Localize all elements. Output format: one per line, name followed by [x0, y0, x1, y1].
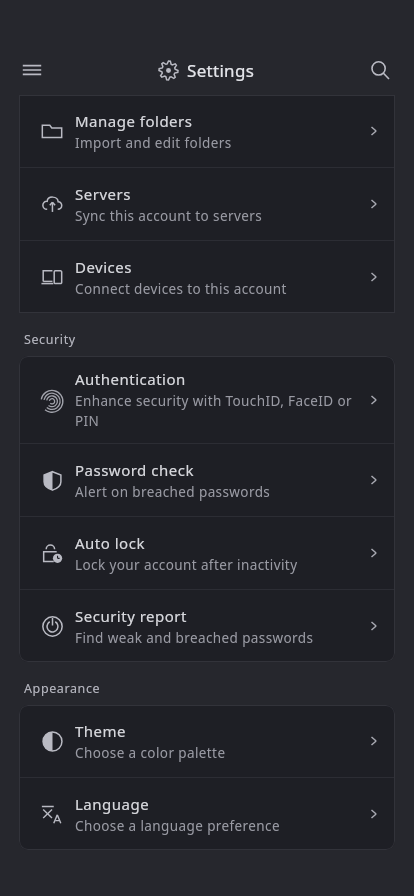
- button[interactable]: Password check: [19, 444, 395, 516]
- staticText: Authentication: [75, 369, 186, 389]
- staticText: Password check: [75, 460, 194, 480]
- button[interactable]: Language: [19, 778, 395, 850]
- staticText: Connect devices to this account: [75, 280, 287, 298]
- staticText: Import and edit folders: [75, 134, 232, 152]
- staticText: Manage folders: [75, 111, 193, 131]
- button[interactable]: Search: [364, 54, 396, 86]
- button[interactable]: Servers: [19, 168, 395, 240]
- staticText: Sync this account to servers: [75, 207, 262, 225]
- button[interactable]: Authentication: [19, 356, 395, 443]
- staticText: Alert on breached passwords: [75, 483, 271, 501]
- staticText: Auto lock: [75, 533, 145, 553]
- staticText: Settings: [187, 59, 255, 82]
- staticText: Find weak and breached passwords: [75, 629, 314, 647]
- staticText: Appearance: [24, 680, 101, 697]
- button[interactable]: Devices: [19, 241, 395, 313]
- staticText: Lock your account after inactivity: [75, 556, 298, 574]
- staticText: Devices: [75, 257, 132, 277]
- button[interactable]: Auto lock: [19, 517, 395, 589]
- staticText: Choose a color palette: [75, 744, 226, 762]
- button[interactable]: Theme: [19, 705, 395, 777]
- button[interactable]: Manage folders: [19, 95, 395, 167]
- staticText: Security report: [75, 606, 187, 626]
- staticText: Servers: [75, 184, 131, 204]
- staticText: Theme: [75, 721, 127, 741]
- staticText: Security: [24, 331, 76, 348]
- staticText: Language: [75, 794, 150, 814]
- button[interactable]: Menu: [16, 54, 48, 86]
- button[interactable]: Security report: [19, 590, 395, 662]
- staticText: Choose a language preference: [75, 817, 280, 835]
- staticText: Enhance security with TouchID, FaceID or…: [75, 392, 357, 430]
